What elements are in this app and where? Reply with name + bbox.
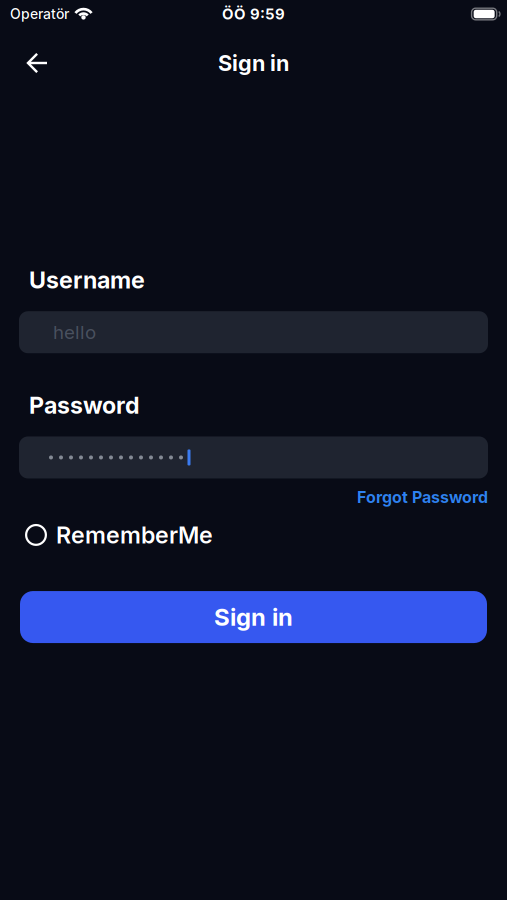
staticText: ÖÖ 9:59 [222,5,285,23]
button[interactable]: RememberMe [25,521,213,549]
button[interactable]: Back [15,41,59,85]
button[interactable]: Forgot Password [357,487,488,507]
button[interactable]: Sign in [20,591,487,643]
staticText: Sign in [218,50,289,76]
staticText: Password [29,391,140,419]
staticText: hello [53,321,96,343]
staticText: Username [29,266,145,294]
staticText: Operatör [10,5,69,22]
staticText: Sign in [214,602,293,631]
staticText: RememberMe [56,521,213,549]
staticText: Forgot Password [357,487,488,507]
